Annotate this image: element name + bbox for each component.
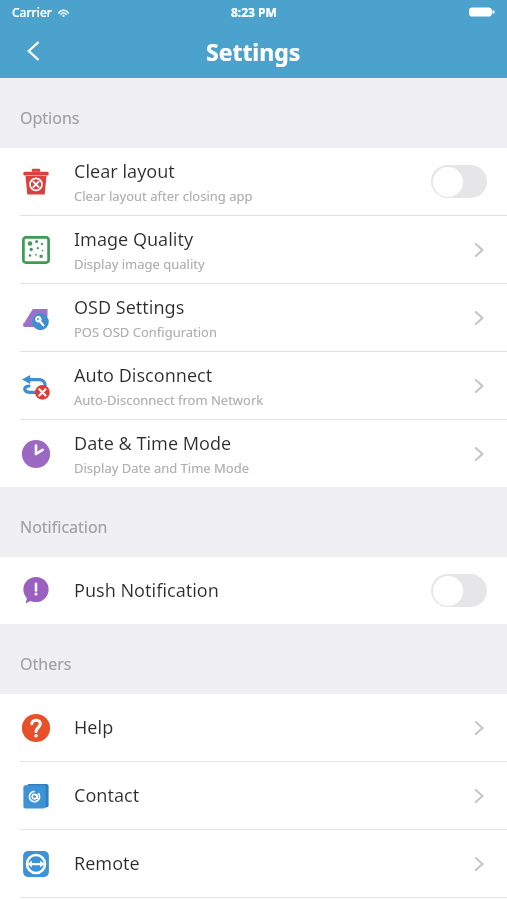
staticText: Help bbox=[74, 715, 114, 740]
staticText: 8:23 PM bbox=[231, 4, 277, 20]
staticText: Contact bbox=[74, 783, 140, 808]
staticText: Settings bbox=[206, 36, 301, 67]
button[interactable]: Back bbox=[14, 31, 54, 71]
staticText: Date & Time Mode bbox=[74, 431, 232, 456]
button[interactable]: Toggle bbox=[431, 574, 487, 607]
staticText: Clear layout after closing app bbox=[74, 187, 253, 205]
staticText: Display image quality bbox=[74, 255, 205, 273]
button[interactable]: Contact bbox=[0, 762, 507, 829]
button[interactable]: Date & Time Mode bbox=[0, 420, 507, 487]
staticText: Others bbox=[20, 653, 72, 675]
button[interactable]: Remote bbox=[0, 830, 507, 897]
button[interactable]: Push Notification bbox=[0, 557, 507, 624]
button[interactable]: Help bbox=[0, 694, 507, 761]
staticText: Auto-Disconnect from Network bbox=[74, 391, 264, 409]
staticText: Image Quality bbox=[74, 227, 194, 252]
staticText: Remote bbox=[74, 851, 140, 876]
button[interactable]: Toggle bbox=[431, 165, 487, 198]
staticText: Clear layout bbox=[74, 159, 175, 184]
button[interactable]: Clear layout bbox=[0, 148, 507, 215]
staticText: Carrier bbox=[12, 4, 52, 20]
button[interactable]: Image Quality bbox=[0, 216, 507, 283]
staticText: Push Notification bbox=[74, 578, 219, 603]
staticText: Display Date and Time Mode bbox=[74, 459, 250, 477]
staticText: Options bbox=[20, 107, 80, 129]
button[interactable]: Auto Disconnect bbox=[0, 352, 507, 419]
staticText: Notification bbox=[20, 516, 108, 538]
staticText: POS OSD Configuration bbox=[74, 323, 218, 341]
staticText: Auto Disconnect bbox=[74, 363, 213, 388]
button[interactable]: OSD Settings bbox=[0, 284, 507, 351]
staticText: OSD Settings bbox=[74, 295, 185, 320]
